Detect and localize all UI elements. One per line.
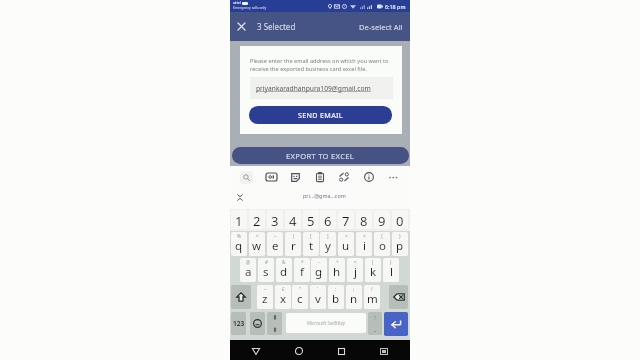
staticText: u (342, 238, 350, 254)
staticText: c (297, 291, 303, 307)
staticText: e (272, 238, 279, 254)
button[interactable]: { (374, 232, 390, 256)
staticText: 3 Selected (257, 21, 296, 32)
button[interactable]: priyankaradhanpura109@gmail.com (250, 77, 393, 99)
button[interactable]: Collapse keyboard panel (233, 190, 247, 204)
staticText: airtel (233, 1, 241, 5)
button[interactable]: & (276, 258, 292, 282)
staticText: priyankaradhanpura109@gmail.com (256, 84, 371, 93)
staticText: ~ (274, 233, 277, 239)
button[interactable]: 2 (249, 210, 265, 229)
staticText: : (335, 286, 337, 292)
button[interactable]: ~ (267, 232, 283, 256)
button[interactable]: Space (286, 313, 366, 333)
button[interactable]: Stickers (287, 169, 303, 185)
button[interactable]: Recents (333, 343, 349, 359)
button[interactable]: 9 (374, 210, 390, 229)
button[interactable]: Clipboard (312, 169, 328, 185)
button[interactable]: < (338, 232, 354, 256)
button[interactable]: 5 (303, 210, 319, 229)
button[interactable]: * (294, 258, 310, 282)
button[interactable]: ; (346, 285, 362, 309)
button[interactable]: £ (275, 285, 291, 309)
button[interactable]: Home (291, 343, 307, 359)
button[interactable]: : (328, 285, 344, 309)
button[interactable]: = (347, 258, 363, 282)
button[interactable]: > (356, 232, 372, 256)
button[interactable]: EXPORT TO EXCEL (232, 147, 409, 164)
button[interactable]: } (392, 232, 408, 256)
button[interactable]: ] (320, 232, 336, 256)
button[interactable]: 3 (267, 210, 283, 229)
button[interactable]: | (285, 232, 301, 256)
button[interactable]: 8 (356, 210, 372, 229)
staticText: 8 (360, 212, 368, 229)
button[interactable]: ( (365, 258, 381, 282)
staticText: . (374, 324, 377, 334)
button[interactable]: % (231, 232, 247, 256)
button[interactable]: Voice input (267, 312, 282, 335)
staticText: 0 (396, 212, 404, 229)
staticText: g (315, 264, 323, 280)
button[interactable]: De-select All (359, 22, 403, 32)
button[interactable]: Emoji (250, 312, 265, 335)
button[interactable]: " (292, 285, 308, 309)
button[interactable]: ? (368, 312, 382, 335)
staticText: 4 (289, 212, 297, 229)
staticText: 3 (271, 212, 279, 229)
button[interactable]: ) (383, 258, 399, 282)
staticText: p (396, 238, 404, 254)
button[interactable]: # (258, 258, 274, 282)
button[interactable]: ' (310, 285, 326, 309)
staticText: pri...@gma...com (303, 192, 346, 199)
staticText: SEND EMAIL (298, 110, 343, 120)
button[interactable]: Back (248, 343, 264, 359)
staticText: | (292, 233, 295, 239)
staticText: a (245, 264, 252, 280)
staticText: ; (353, 286, 355, 292)
staticText: ) (390, 259, 392, 265)
button[interactable]: Info (361, 169, 377, 185)
button[interactable]: 4 (285, 210, 301, 229)
button[interactable]: / (364, 285, 380, 309)
staticText: 6:18 pm (385, 3, 406, 10)
button[interactable]: Close (234, 19, 249, 34)
button[interactable]: Search (238, 169, 254, 185)
button[interactable]: Screenshot (376, 343, 392, 359)
staticText: EXPORT TO EXCEL (286, 151, 355, 161)
staticText: n (350, 291, 358, 307)
button[interactable]: 123 (231, 312, 246, 335)
button[interactable]: More (385, 169, 401, 185)
button[interactable]: 1 (231, 210, 247, 229)
staticText: { (381, 233, 383, 239)
staticText: * (301, 259, 304, 265)
button[interactable]: SEND EMAIL (249, 106, 392, 124)
staticText: % (237, 233, 241, 239)
staticText: 9 (378, 212, 386, 229)
staticText: £ (282, 286, 285, 292)
staticText: q (235, 238, 243, 254)
staticText: Microsoft SwiftKey (307, 320, 346, 326)
button[interactable]: + (329, 258, 345, 282)
staticText: ( (372, 259, 374, 265)
button[interactable]: 6 (320, 210, 336, 229)
button[interactable]: - (311, 258, 327, 282)
button[interactable]: ~ (257, 285, 273, 309)
button[interactable]: Translate (336, 169, 352, 185)
button[interactable]: Enter (384, 312, 408, 336)
button[interactable]: 0 (392, 210, 408, 229)
button[interactable]: @ (240, 258, 256, 282)
button[interactable]: ^ (249, 232, 265, 256)
button[interactable]: Shift (231, 285, 251, 309)
staticText: < (345, 233, 348, 239)
staticText: m (367, 291, 378, 307)
staticText: = (354, 259, 357, 265)
staticText: Emergency calls only (233, 5, 267, 10)
staticText: 2 (253, 212, 261, 229)
button[interactable]: Backspace (389, 285, 408, 309)
staticText: # (265, 259, 268, 265)
button[interactable]: 7 (338, 210, 354, 229)
staticText: j (354, 264, 357, 280)
button[interactable]: [ (303, 232, 319, 256)
button[interactable]: GIF (263, 169, 279, 185)
